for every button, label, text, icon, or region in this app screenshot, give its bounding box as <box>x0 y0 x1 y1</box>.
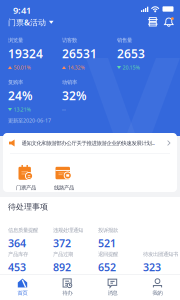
staticText: 投诉报款 <box>98 227 118 234</box>
button[interactable]: 违规处理通知 <box>53 227 98 250</box>
button[interactable]: 门票产品 <box>7 164 45 192</box>
staticText: 2653 <box>117 46 145 61</box>
button[interactable]: 线路产品 <box>45 164 83 192</box>
staticText: 待发出团通知书 <box>143 251 178 258</box>
staticText: 产品过期 <box>53 251 73 258</box>
staticText: 信息质量提醒 <box>8 227 38 234</box>
staticText: 892 <box>53 260 71 274</box>
button[interactable]: 待办 <box>45 275 90 300</box>
button[interactable]: 首页 <box>0 275 45 300</box>
button[interactable]: 信息质量提醒 <box>8 227 53 250</box>
staticText: 待处理事项 <box>8 202 48 212</box>
button[interactable]: Notifications <box>161 14 177 30</box>
button[interactable]: 门票&活动 <box>8 17 53 28</box>
staticText: 首页 <box>17 290 27 296</box>
button[interactable]: 产品过期 <box>53 251 98 274</box>
staticText: -- <box>62 106 66 113</box>
staticText: 521 <box>98 236 116 250</box>
staticText: 13.21% <box>13 106 30 113</box>
staticText: 浏览量 <box>8 37 23 44</box>
button[interactable]: 产品库存 <box>8 251 53 274</box>
staticText: 线路产品 <box>54 184 74 191</box>
staticText: 323 <box>143 260 161 274</box>
staticText: 退回提醒 <box>98 251 118 258</box>
staticText: 26531 <box>62 46 97 61</box>
staticText: 复购率 <box>8 79 23 86</box>
staticText: 更新至2020-06-17 <box>8 117 51 124</box>
staticText: 372 <box>53 236 71 250</box>
staticText: 门票&活动 <box>8 17 46 28</box>
staticText: 消息 <box>107 290 117 296</box>
staticText: 14.32% <box>67 64 84 71</box>
staticText: 9:41 <box>13 4 31 16</box>
staticText: 门票产品 <box>16 184 36 191</box>
staticText: 24% <box>8 88 33 103</box>
staticText: 访客数 <box>62 37 77 44</box>
staticText: 652 <box>98 260 116 274</box>
staticText: 20.15% <box>122 64 139 71</box>
staticText: 453 <box>8 260 26 274</box>
staticText: 通知文化和旅游部办公厅关于推进旅游企业的快速发展计划... <box>21 139 154 147</box>
staticText: 32% <box>62 88 87 103</box>
button[interactable]: 投诉报款 <box>98 227 143 250</box>
staticText: 19324 <box>8 46 43 61</box>
staticText: 待办 <box>62 290 72 296</box>
button[interactable]: 消息 <box>90 275 135 300</box>
button[interactable]: 我的 <box>135 275 180 300</box>
button[interactable]: 退回提醒 <box>98 251 143 274</box>
staticText: 364 <box>8 236 26 250</box>
staticText: 50.01% <box>13 64 30 71</box>
staticText: 销售量 <box>117 37 132 44</box>
staticText: 违规处理通知 <box>53 227 83 234</box>
button[interactable]: 待发出团通知书 <box>143 251 180 274</box>
staticText: 我的 <box>152 290 162 296</box>
staticText: 动销率 <box>62 79 77 86</box>
button[interactable]: Tasks <box>145 14 161 30</box>
staticText: 产品库存 <box>8 251 28 258</box>
button[interactable]: 通知文化和旅游部办公厅关于推进旅游企业的快速发展计划... <box>3 133 177 153</box>
